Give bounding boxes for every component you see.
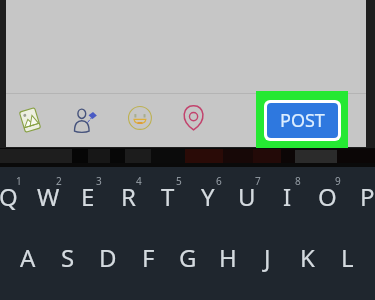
staticText: O xyxy=(318,180,337,213)
staticText: 8 xyxy=(295,174,301,188)
staticText: U xyxy=(238,180,256,213)
button[interactable]: 6 xyxy=(188,166,228,218)
staticText: G xyxy=(179,241,197,274)
staticText: L xyxy=(341,241,354,274)
button[interactable]: Add photo xyxy=(18,108,42,132)
staticText: S xyxy=(61,241,75,274)
staticText: R xyxy=(121,180,136,213)
staticText: H xyxy=(219,241,237,274)
button[interactable]: 8 xyxy=(267,166,307,218)
button[interactable]: A xyxy=(8,227,48,279)
button[interactable]: J xyxy=(247,227,287,279)
button[interactable]: 7 xyxy=(227,166,267,218)
button[interactable]: 0 xyxy=(347,166,375,218)
staticText: 6 xyxy=(216,174,222,188)
staticText: 5 xyxy=(176,174,182,188)
staticText: W xyxy=(37,180,60,213)
staticText: 7 xyxy=(255,174,261,188)
staticText: 4 xyxy=(136,174,142,188)
staticText: Y xyxy=(201,180,215,213)
staticText: 1 xyxy=(16,174,22,188)
staticText: F xyxy=(142,241,155,274)
staticText: 9 xyxy=(335,174,341,188)
button[interactable]: 2 xyxy=(28,166,68,218)
staticText: Q xyxy=(0,180,18,213)
staticText: J xyxy=(264,241,271,274)
button[interactable]: H xyxy=(208,227,248,279)
staticText: D xyxy=(99,241,117,274)
staticText: P xyxy=(360,180,375,213)
button[interactable]: 5 xyxy=(148,166,188,218)
button[interactable]: 9 xyxy=(307,166,347,218)
staticText: T xyxy=(161,180,175,213)
button[interactable]: 3 xyxy=(68,166,108,218)
button[interactable]: Add emoji xyxy=(128,106,154,132)
button[interactable]: 4 xyxy=(108,166,148,218)
button[interactable]: L xyxy=(327,227,367,279)
button[interactable]: Add location xyxy=(183,107,207,131)
staticText: A xyxy=(20,241,36,274)
button[interactable]: 1 xyxy=(0,166,28,218)
staticText: K xyxy=(300,241,315,274)
button[interactable]: K xyxy=(287,227,327,279)
staticText: POST xyxy=(280,108,325,133)
button[interactable]: D xyxy=(88,227,128,279)
button[interactable]: S xyxy=(48,227,88,279)
staticText: 3 xyxy=(96,174,102,188)
staticText: E xyxy=(81,180,95,213)
button[interactable]: POST xyxy=(267,103,338,138)
button[interactable]: F xyxy=(128,227,168,279)
button[interactable]: Tag people xyxy=(74,107,100,133)
button[interactable]: G xyxy=(168,227,208,279)
staticText: 2 xyxy=(56,174,62,188)
staticText: I xyxy=(283,180,292,213)
